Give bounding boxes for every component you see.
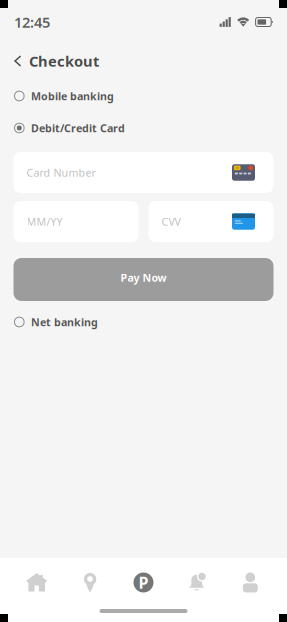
staticText: Checkout xyxy=(29,51,99,71)
staticText: Net banking xyxy=(31,315,98,329)
staticText: CVV xyxy=(161,214,180,229)
button[interactable]: MM/YY xyxy=(13,201,138,242)
staticText: MM/YY xyxy=(26,214,62,229)
staticText: P xyxy=(138,572,148,593)
staticText: Pay Now xyxy=(120,270,166,285)
button[interactable]: Notifications xyxy=(170,558,224,621)
button[interactable]: CVV xyxy=(148,201,273,242)
button[interactable]: Mobile banking xyxy=(0,80,287,112)
button[interactable]: Checkout xyxy=(0,44,111,78)
button[interactable]: Parking xyxy=(117,558,170,621)
staticText: Debit/Credit Card xyxy=(31,121,125,135)
staticText: Card Number xyxy=(26,165,95,180)
button[interactable]: Home xyxy=(10,558,63,621)
button[interactable]: Net banking xyxy=(0,306,287,338)
button[interactable]: Locations xyxy=(63,558,117,621)
button[interactable]: Card Number xyxy=(13,152,273,193)
button[interactable]: Debit/Credit Card xyxy=(0,112,287,144)
button[interactable]: Pay Now xyxy=(13,258,273,301)
staticText: Mobile banking xyxy=(31,89,114,103)
staticText: 12:45 xyxy=(14,12,50,32)
button[interactable]: Profile xyxy=(224,558,277,621)
